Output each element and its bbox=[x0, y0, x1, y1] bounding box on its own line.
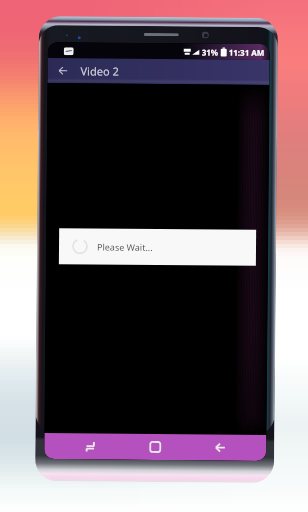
button[interactable]: Navigate up bbox=[52, 60, 74, 81]
staticText: Please Wait... bbox=[97, 240, 153, 253]
staticText: 31% bbox=[202, 46, 219, 57]
staticText: 11:31 AM bbox=[229, 47, 265, 58]
staticText: Video 2 bbox=[80, 63, 120, 79]
button[interactable]: Recent apps bbox=[58, 433, 122, 460]
button[interactable]: Back bbox=[187, 434, 252, 461]
button[interactable]: Home bbox=[122, 434, 187, 460]
